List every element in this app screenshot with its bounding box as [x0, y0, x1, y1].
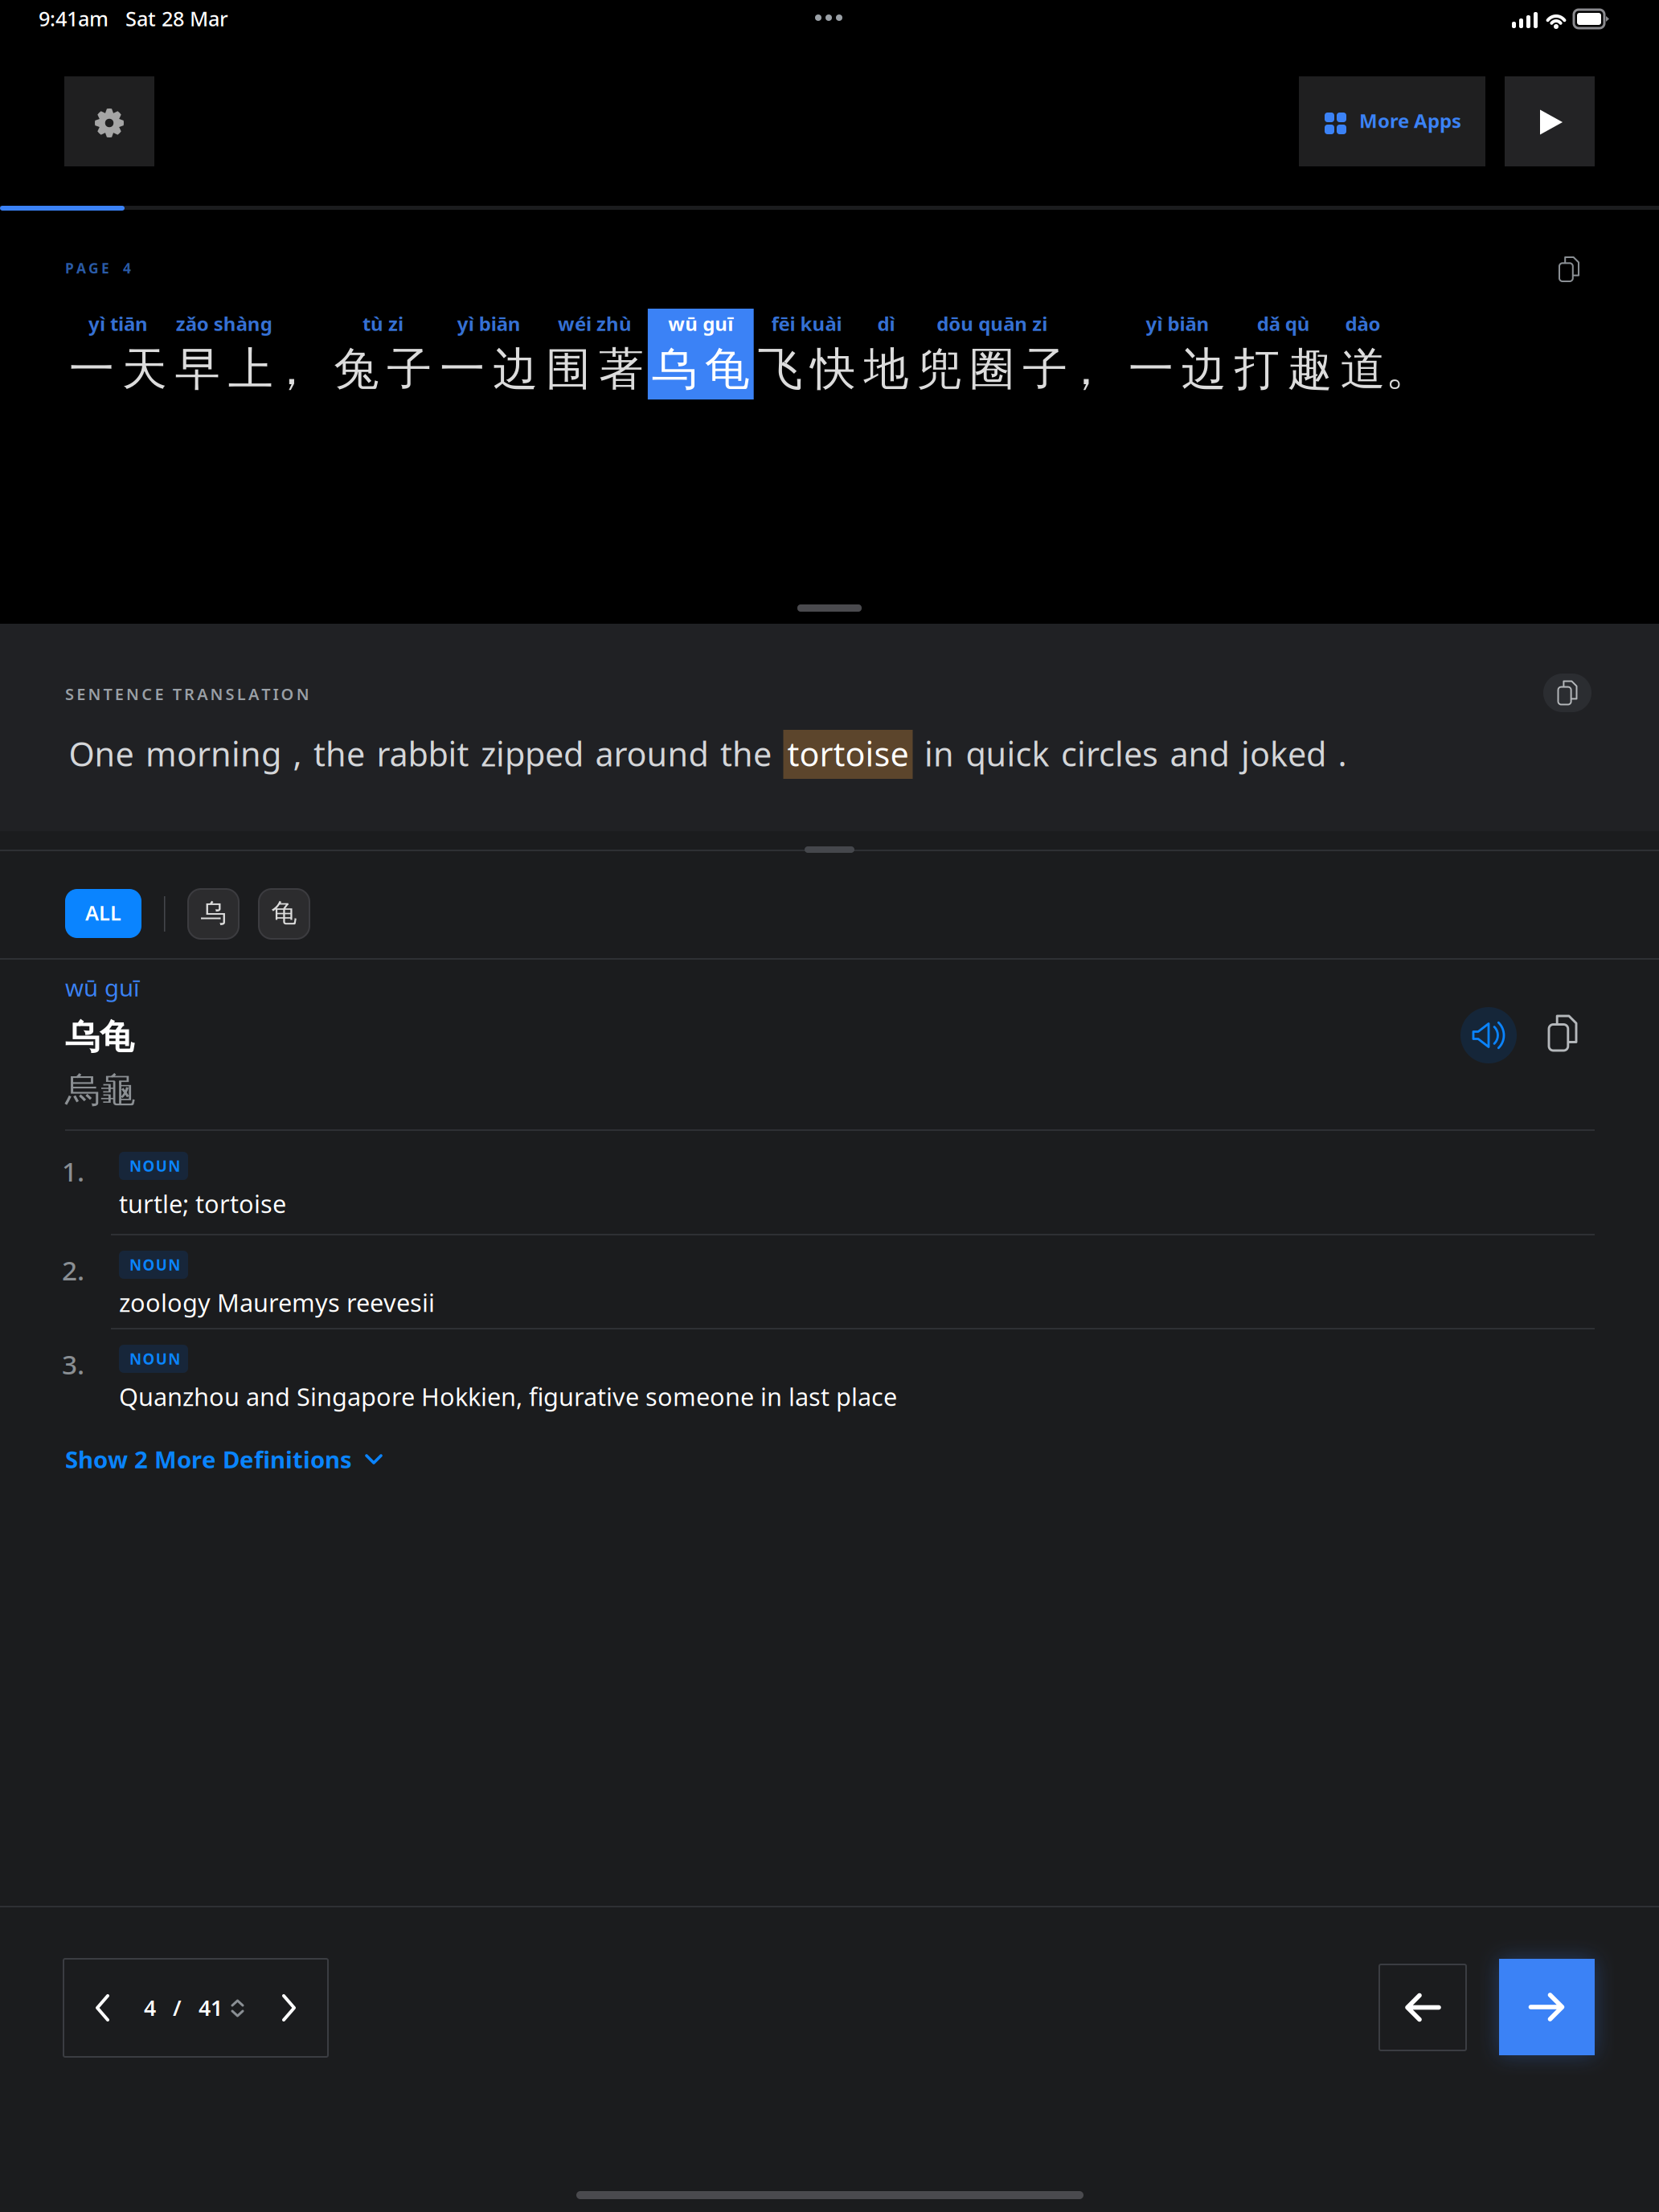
staticText: 3. — [62, 1346, 84, 1382]
staticText: dǎ qù — [1257, 311, 1310, 336]
staticText: G — [88, 259, 99, 277]
staticText: E — [115, 683, 124, 705]
staticText: 一 — [1129, 342, 1174, 397]
staticText: 乌 — [201, 897, 226, 929]
staticText: ， — [1063, 342, 1108, 397]
button[interactable]: Next word — [1499, 1959, 1595, 2055]
staticText: circles — [1061, 732, 1158, 776]
button[interactable]: Copy translation — [1543, 674, 1591, 712]
staticText: T — [173, 683, 181, 705]
staticText: 4 / 41 — [144, 1993, 223, 2022]
staticText: I — [273, 683, 278, 705]
button[interactable]: Show 2 More Definitions — [65, 1444, 383, 1475]
staticText: 围 — [546, 342, 591, 397]
staticText: O — [143, 1156, 155, 1176]
staticText: , — [293, 732, 302, 776]
staticText: 边 — [1181, 342, 1226, 397]
staticText: 乌 — [652, 342, 697, 397]
staticText: 著 — [599, 342, 644, 397]
staticText: A — [76, 259, 86, 277]
staticText: yì biān — [1146, 311, 1209, 336]
staticText: 兜 — [917, 342, 962, 397]
staticText: . — [1338, 732, 1347, 776]
staticText: zoology Mauremys reevesii — [119, 1286, 435, 1319]
button[interactable]: ALL — [65, 889, 141, 938]
staticText: fēi kuài — [771, 311, 842, 336]
button[interactable]: Play audio — [1505, 76, 1595, 166]
button[interactable]: Next page — [281, 1993, 297, 2022]
staticText: N — [210, 683, 223, 705]
staticText: O — [281, 683, 294, 705]
staticText: More Apps — [1359, 108, 1461, 133]
button[interactable]: 龟 — [259, 889, 309, 939]
staticText: tù zi — [362, 311, 403, 336]
staticText: dào — [1345, 311, 1381, 336]
staticText: Quanzhou and Singapore Hokkien, figurati… — [119, 1380, 897, 1413]
staticText: T — [103, 683, 112, 705]
staticText: 。 — [1385, 342, 1430, 397]
staticText: yì biān — [457, 311, 521, 336]
staticText: 道 — [1340, 342, 1385, 397]
staticText: 子 — [387, 342, 432, 397]
button[interactable]: More Apps — [1299, 76, 1485, 166]
staticText: ， — [269, 342, 314, 397]
staticText: S — [65, 683, 74, 705]
staticText: dōu quān zi — [937, 311, 1047, 336]
staticText: 龟 — [271, 897, 297, 929]
staticText: U — [156, 1156, 167, 1176]
staticText: N — [129, 1255, 141, 1275]
button[interactable]: 乌 — [188, 889, 239, 939]
staticText: U — [156, 1349, 167, 1369]
staticText: 一 — [440, 342, 485, 397]
staticText: 打 — [1234, 342, 1279, 397]
staticText: E — [101, 259, 109, 277]
staticText: zipped — [481, 732, 584, 776]
staticText: One — [69, 732, 134, 776]
staticText: N — [88, 683, 101, 705]
staticText: U — [156, 1255, 167, 1275]
staticText: N — [168, 1349, 180, 1369]
button[interactable]: Previous page — [94, 1993, 111, 2022]
staticText: the — [313, 732, 365, 776]
staticText: N — [129, 1349, 141, 1369]
button[interactable]: Previous word — [1379, 1964, 1466, 2050]
staticText: in — [924, 732, 954, 776]
staticText: 1. — [62, 1153, 84, 1189]
staticText: quick — [966, 732, 1049, 776]
staticText: C — [142, 683, 152, 705]
staticText: A — [248, 683, 259, 705]
staticText: N — [296, 683, 309, 705]
staticText: 早 — [175, 342, 220, 397]
button[interactable]: Settings — [64, 76, 154, 166]
staticText: 2. — [62, 1252, 84, 1288]
staticText: E — [77, 683, 85, 705]
staticText: joked — [1241, 732, 1326, 776]
button[interactable]: Play pronunciation — [1460, 1007, 1517, 1063]
button[interactable]: Copy sentence — [1559, 257, 1579, 281]
staticText: A — [197, 683, 208, 705]
staticText: turtle; tortoise — [119, 1187, 286, 1220]
staticText: O — [143, 1255, 155, 1275]
staticText: 4 — [123, 259, 131, 277]
staticText: Sat 28 Mar — [125, 5, 228, 32]
staticText: 飞 — [758, 342, 803, 397]
staticText: rabbit — [377, 732, 469, 776]
staticText: wéi zhù — [558, 311, 632, 336]
staticText: 烏龜 — [65, 1068, 136, 1112]
staticText: zǎo shàng — [176, 311, 272, 336]
staticText: 龟 — [705, 342, 750, 397]
staticText: 一 — [69, 342, 114, 397]
staticText: 地 — [864, 342, 909, 397]
button[interactable]: Copy word — [1549, 1016, 1576, 1051]
staticText: 圈 — [970, 342, 1015, 397]
staticText: 兔 — [334, 342, 379, 397]
staticText: 上 — [228, 342, 273, 397]
staticText: S — [226, 683, 234, 705]
staticText: 边 — [493, 342, 538, 397]
staticText: T — [261, 683, 270, 705]
button[interactable]: Page 4 of 41 — [144, 1993, 247, 2026]
staticText: 子 — [1023, 342, 1068, 397]
staticText: L — [237, 683, 246, 705]
staticText: Show 2 More Definitions — [65, 1444, 352, 1475]
staticText: E — [155, 683, 163, 705]
